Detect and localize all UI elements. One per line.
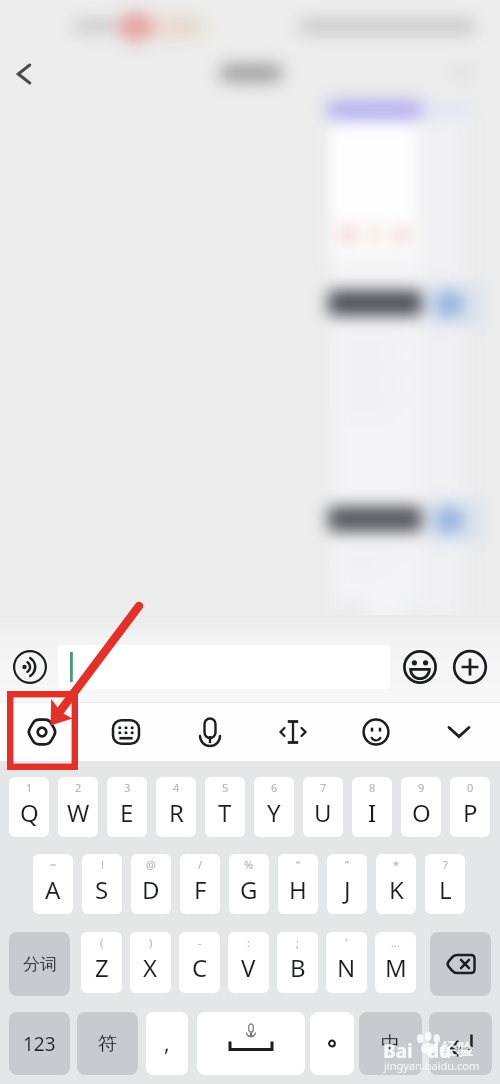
button[interactable]: Voice input bbox=[13, 650, 47, 684]
staticText: Bai bbox=[383, 1038, 413, 1064]
staticText: , bbox=[164, 1029, 170, 1058]
staticText: 经验 bbox=[441, 1040, 473, 1060]
button[interactable]: ! bbox=[82, 854, 122, 914]
staticText: S bbox=[95, 873, 109, 906]
staticText: … bbox=[391, 935, 400, 950]
button[interactable]: 6 bbox=[254, 777, 294, 837]
staticText: * bbox=[393, 857, 400, 872]
button[interactable]: 9 bbox=[401, 777, 441, 837]
button[interactable]: 0 bbox=[450, 777, 490, 837]
staticText: 0 bbox=[467, 780, 474, 795]
staticText: jingyan.baidu.com bbox=[384, 1058, 480, 1073]
staticText: 2 bbox=[75, 780, 82, 795]
button[interactable]: Keyboard settings bbox=[0, 702, 84, 761]
staticText: D bbox=[142, 873, 160, 906]
staticText: “ bbox=[296, 857, 300, 872]
button[interactable]: 3 bbox=[107, 777, 147, 837]
staticText: X bbox=[143, 951, 158, 984]
button[interactable]: 分词 bbox=[9, 932, 70, 996]
button[interactable]: @ bbox=[131, 854, 171, 914]
button[interactable]: Move cursor bbox=[251, 702, 334, 761]
button[interactable]: ) bbox=[130, 932, 171, 993]
staticText: ' bbox=[345, 935, 348, 950]
button[interactable]: Backspace bbox=[430, 932, 491, 996]
staticText: 123 bbox=[23, 1031, 56, 1057]
button[interactable]: … bbox=[375, 932, 416, 993]
staticText: G bbox=[240, 873, 258, 906]
staticText: 7 bbox=[320, 780, 327, 795]
staticText: 中 bbox=[381, 1032, 400, 1056]
staticText: ( bbox=[100, 935, 104, 950]
button[interactable]: / bbox=[180, 854, 220, 914]
button[interactable]: 1 bbox=[9, 777, 49, 837]
staticText: T bbox=[218, 796, 232, 829]
button[interactable]: Space bbox=[197, 1012, 305, 1075]
staticText: / bbox=[198, 857, 203, 872]
button[interactable]: Emoji bbox=[402, 649, 438, 685]
button[interactable]: Stickers bbox=[334, 702, 417, 761]
staticText: Y bbox=[267, 796, 281, 829]
button[interactable]: Enter bbox=[429, 1012, 492, 1075]
button[interactable] bbox=[58, 645, 390, 689]
staticText: F bbox=[194, 873, 207, 906]
staticText: ? bbox=[443, 857, 448, 872]
button[interactable]: : bbox=[228, 932, 269, 993]
staticText: I bbox=[368, 796, 377, 829]
staticText: K bbox=[389, 873, 404, 906]
staticText: W bbox=[67, 796, 90, 829]
staticText: - bbox=[198, 935, 202, 950]
staticText: V bbox=[241, 951, 256, 984]
button[interactable]: - bbox=[179, 932, 220, 993]
button[interactable]: Back bbox=[8, 58, 40, 90]
button[interactable]: Hide keyboard bbox=[417, 702, 500, 761]
button[interactable]: Keyboard layout bbox=[84, 702, 168, 761]
button[interactable]: ~ bbox=[33, 854, 73, 914]
button[interactable]: Voice input bbox=[168, 702, 251, 761]
button[interactable]: Period bbox=[310, 1012, 354, 1075]
button[interactable]: 中 bbox=[359, 1012, 422, 1075]
button[interactable]: 5 bbox=[205, 777, 245, 837]
staticText: @ bbox=[146, 857, 156, 872]
staticText: 分词 bbox=[23, 954, 57, 975]
staticText: ” bbox=[345, 857, 349, 872]
staticText: J bbox=[344, 873, 351, 906]
staticText: A bbox=[45, 873, 61, 906]
staticText: ~ bbox=[50, 857, 57, 872]
staticText: P bbox=[463, 796, 478, 829]
button[interactable]: More bbox=[452, 649, 488, 685]
staticText: B bbox=[290, 951, 306, 984]
staticText: L bbox=[439, 873, 452, 906]
staticText: 5 bbox=[222, 780, 229, 795]
button[interactable]: ” bbox=[327, 854, 367, 914]
staticText: % bbox=[244, 857, 254, 872]
button[interactable]: 4 bbox=[156, 777, 196, 837]
button[interactable]: 2 bbox=[58, 777, 98, 837]
staticText: N bbox=[337, 951, 356, 984]
staticText: 8 bbox=[369, 780, 376, 795]
button[interactable]: ; bbox=[277, 932, 318, 993]
button[interactable]: ' bbox=[326, 932, 367, 993]
staticText: 1 bbox=[26, 780, 33, 795]
button[interactable]: ( bbox=[81, 932, 122, 993]
staticText: E bbox=[120, 796, 134, 829]
button[interactable]: 符 bbox=[77, 1012, 138, 1075]
staticText: 3 bbox=[124, 780, 131, 795]
staticText: ; bbox=[296, 935, 299, 950]
staticText: M bbox=[385, 951, 407, 984]
button[interactable]: % bbox=[229, 854, 269, 914]
staticText: Z bbox=[95, 951, 109, 984]
button[interactable]: 8 bbox=[352, 777, 392, 837]
button[interactable]: 7 bbox=[303, 777, 343, 837]
staticText: 9 bbox=[418, 780, 425, 795]
staticText: 6 bbox=[271, 780, 278, 795]
button[interactable]: “ bbox=[278, 854, 318, 914]
staticText: R bbox=[169, 796, 184, 829]
staticText: U bbox=[314, 796, 332, 829]
staticText: du bbox=[427, 1038, 452, 1064]
button[interactable]: 123 bbox=[9, 1012, 70, 1075]
button[interactable]: * bbox=[376, 854, 416, 914]
staticText: 符 bbox=[98, 1032, 117, 1056]
staticText: O bbox=[412, 796, 431, 829]
button[interactable]: ? bbox=[425, 854, 465, 914]
button[interactable]: , bbox=[146, 1012, 188, 1075]
